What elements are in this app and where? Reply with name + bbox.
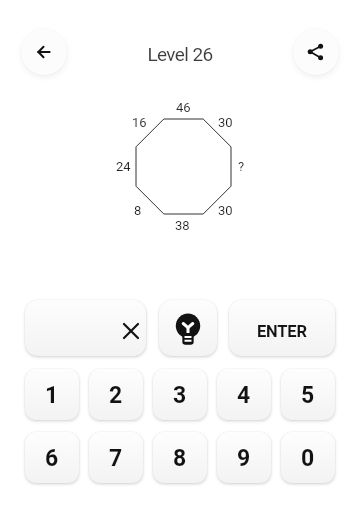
staticText: 8 xyxy=(173,445,187,472)
staticText: Level 26 xyxy=(0,43,360,65)
staticText: ? xyxy=(238,159,245,174)
button[interactable]: 2 xyxy=(89,369,143,420)
staticText: 8 xyxy=(134,203,142,218)
button[interactable]: 8 xyxy=(153,432,207,483)
staticText: 38 xyxy=(175,218,190,233)
button[interactable]: 7 xyxy=(89,432,143,483)
button[interactable]: Back xyxy=(21,29,67,75)
button[interactable]: 9 xyxy=(217,432,271,483)
button[interactable]: 6 xyxy=(25,432,79,483)
staticText: 3 xyxy=(173,382,187,409)
button[interactable]: Share xyxy=(293,29,339,75)
button[interactable]: 0 xyxy=(281,432,335,483)
button[interactable]: Hint xyxy=(159,300,217,356)
staticText: 7 xyxy=(109,445,123,472)
button[interactable]: 1 xyxy=(25,369,79,420)
staticText: 0 xyxy=(301,445,315,472)
button[interactable]: ENTER xyxy=(229,300,335,356)
staticText: 30 xyxy=(218,115,233,130)
staticText: 4 xyxy=(237,382,251,409)
staticText: 16 xyxy=(132,115,147,130)
staticText: 6 xyxy=(45,445,59,472)
button[interactable]: Delete xyxy=(25,300,146,356)
staticText: 1 xyxy=(45,382,59,409)
staticText: ENTER xyxy=(257,322,307,341)
staticText: 46 xyxy=(176,100,191,115)
button[interactable]: 5 xyxy=(281,369,335,420)
staticText: 9 xyxy=(237,445,251,472)
staticText: 2 xyxy=(109,382,123,409)
button[interactable]: 3 xyxy=(153,369,207,420)
staticText: 30 xyxy=(218,203,233,218)
staticText: 5 xyxy=(301,382,315,409)
staticText: 24 xyxy=(116,159,131,174)
button[interactable]: 4 xyxy=(217,369,271,420)
